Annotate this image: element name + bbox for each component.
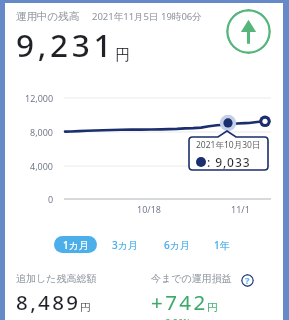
staticText: 12,000 [25,92,54,104]
staticText: 円 [115,46,130,65]
staticText: ? [245,274,250,287]
staticText: 4,000 [30,160,54,172]
button[interactable]: 1カ月 [54,236,97,253]
staticText: : 9,033 [207,154,251,170]
staticText: 10/18 [137,203,161,215]
staticText: 0 [48,193,54,205]
button[interactable]: 6カ月 [157,236,196,253]
staticText: 6カ月 [164,238,190,252]
button[interactable]: 入金する [226,9,271,54]
staticText: 3カ月 [112,238,138,252]
staticText: 今までの運用損益 [151,272,232,285]
button[interactable]: ヘルプ [241,274,254,287]
staticText: （+8.96%） [151,316,200,320]
staticText: +742 [151,288,208,316]
staticText: 2021年11月5日 19時06分 [92,10,202,23]
staticText: 円 [207,301,218,314]
staticText: 8,000 [30,126,54,138]
button[interactable]: 1年 [206,236,238,253]
staticText: 1年 [214,238,230,252]
staticText: 追加した残高総額 [16,272,97,285]
staticText: 8,489 [16,288,81,316]
staticText: 運用中の残高 [16,10,80,23]
staticText: 1カ月 [63,238,89,252]
staticText: 円 [80,301,91,314]
button[interactable]: 3カ月 [105,236,144,253]
staticText: 2021年10月30日 [196,139,261,151]
staticText: 9,231 [16,23,116,66]
staticText: 11/1 [231,203,250,215]
